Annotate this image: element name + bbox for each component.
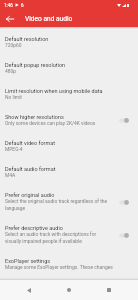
staticText: 6	[21, 3, 24, 8]
staticText: Prefer original audio	[5, 192, 55, 198]
staticText: Default resolution	[5, 36, 49, 42]
staticText: No limit	[5, 94, 22, 100]
button[interactable]: Back	[18, 280, 40, 300]
staticText: Default video format	[5, 140, 56, 146]
staticText: Only some devices can play 2K/4K videos	[5, 120, 96, 126]
staticText: Manage some ExoPlayer settings. These ch…	[5, 264, 129, 271]
staticText: Default popup resolution	[5, 62, 66, 68]
staticText: M4A	[5, 172, 16, 178]
staticText: Default audio format	[5, 166, 56, 172]
button[interactable]: Prefer original audio	[0, 185, 138, 218]
button[interactable]: Navigate up	[0, 10, 20, 27]
button[interactable]: Default video format	[0, 133, 138, 159]
staticText: Select the original audio track regardle…	[5, 198, 110, 211]
staticText: Limit resolution when using mobile data	[5, 88, 103, 94]
staticText: MPEG-4	[5, 146, 23, 152]
button[interactable]: Show higher resolutions	[0, 107, 138, 133]
staticText: 1:46	[4, 3, 13, 8]
button[interactable]: Prefer descriptive audio	[0, 218, 138, 251]
staticText: Prefer descriptive audio	[5, 225, 63, 231]
button[interactable]: Default audio format	[0, 159, 138, 185]
staticText: Video and audio	[25, 15, 73, 23]
staticText: ExoPlayer settings	[5, 258, 51, 264]
staticText: 720p60	[5, 42, 22, 48]
button[interactable]: ExoPlayer settings	[0, 251, 138, 278]
button[interactable]: Recent apps	[98, 280, 120, 300]
staticText: Select an audio track with descriptions …	[5, 231, 110, 244]
button[interactable]: Default popup resolution	[0, 55, 138, 81]
staticText: 480p	[5, 68, 16, 74]
button[interactable]: Limit resolution when using mobile data	[0, 81, 138, 107]
button[interactable]: Default resolution	[0, 29, 138, 55]
staticText: Show higher resolutions	[5, 114, 64, 120]
button[interactable]: Home	[58, 280, 80, 300]
